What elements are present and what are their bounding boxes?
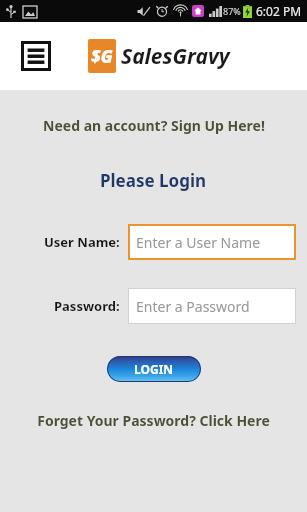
staticText: User Name: <box>44 233 120 251</box>
button[interactable]: Enter a User Name <box>128 224 296 260</box>
staticText: Need an account? Sign Up Here! <box>43 116 265 135</box>
staticText: 87% <box>223 5 241 17</box>
button[interactable]: Open navigation menu <box>20 40 52 72</box>
staticText: $G <box>91 45 113 68</box>
staticText: SalesGravy <box>121 42 230 71</box>
staticText: 6:02 PM <box>256 3 302 19</box>
staticText: Enter a Password <box>136 297 250 316</box>
button[interactable]: Enter a Password <box>128 288 296 324</box>
staticText: LOGIN <box>134 361 174 377</box>
button[interactable]: $G <box>88 39 230 73</box>
staticText: Password: <box>54 297 120 315</box>
staticText: Forget Your Password? Click Here <box>37 411 270 430</box>
button[interactable]: Need an account? Sign Up Here! <box>0 113 307 138</box>
staticText: Please Login <box>100 169 207 192</box>
button[interactable]: LOGIN <box>107 356 201 382</box>
button[interactable]: Forget Your Password? Click Here <box>0 408 307 433</box>
staticText: Enter a User Name <box>136 233 261 252</box>
